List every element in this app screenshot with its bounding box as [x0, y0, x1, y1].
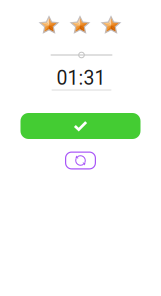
- button[interactable]: Reset: [65, 151, 96, 169]
- staticText: 01:31: [56, 67, 105, 89]
- button[interactable]: Confirm: [20, 113, 140, 139]
